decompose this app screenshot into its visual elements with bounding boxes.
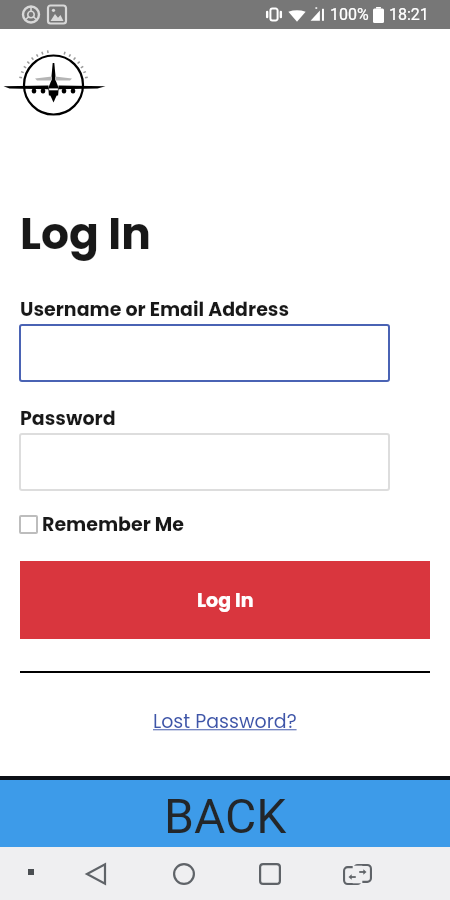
staticText: Log In — [20, 203, 151, 265]
staticText: BACK — [164, 788, 287, 844]
button[interactable]: Lost Password? — [147, 705, 303, 738]
button[interactable]: Log In — [20, 561, 430, 639]
staticText: 18:21 — [389, 5, 429, 24]
button[interactable]: Flight school logo, go home — [2, 48, 116, 118]
button[interactable]: Recent apps — [246, 857, 294, 891]
staticText: Password — [20, 405, 116, 432]
button[interactable]: Home — [160, 857, 208, 891]
button[interactable] — [19, 324, 390, 382]
staticText: 100% — [330, 5, 369, 24]
staticText: Username or Email Address — [20, 296, 290, 323]
button[interactable]: Switch apps — [333, 857, 381, 891]
staticText: Log In — [197, 587, 254, 614]
staticText: Remember Me — [42, 511, 184, 538]
button[interactable]: BACK — [0, 780, 450, 847]
staticText: Lost Password? — [153, 708, 297, 735]
button[interactable]: Back — [72, 857, 120, 891]
button[interactable] — [19, 433, 390, 491]
button[interactable]: Remember Me — [19, 511, 184, 538]
